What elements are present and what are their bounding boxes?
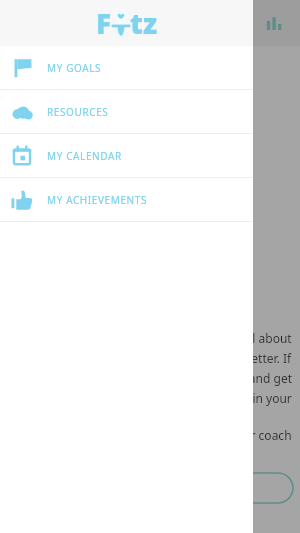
staticText: tz [130,4,158,42]
staticText: MY ACHIEVEMENTS [47,193,148,207]
button[interactable]: MY CALENDAR [0,134,253,177]
staticText: consistency, not speed. Do better. If [91,350,292,366]
staticText: you stumble, stand up and get [120,370,292,386]
staticText: F [96,4,112,42]
staticText: Remember, it is all about [153,330,292,346]
staticText: going again. I believe in your [129,390,292,406]
staticText: MY GOALS [47,61,102,75]
button[interactable]: Statistics [264,14,284,34]
staticText: MY CALENDAR [47,149,122,163]
staticText: ability to succeed. — your coach [111,427,292,443]
button[interactable]: MY ACHIEVEMENTS [0,178,253,221]
button[interactable]: MY GOALS [0,46,253,89]
staticText: RESOURCES [47,105,109,119]
button[interactable] [198,472,294,504]
button[interactable]: RESOURCES [0,90,253,133]
